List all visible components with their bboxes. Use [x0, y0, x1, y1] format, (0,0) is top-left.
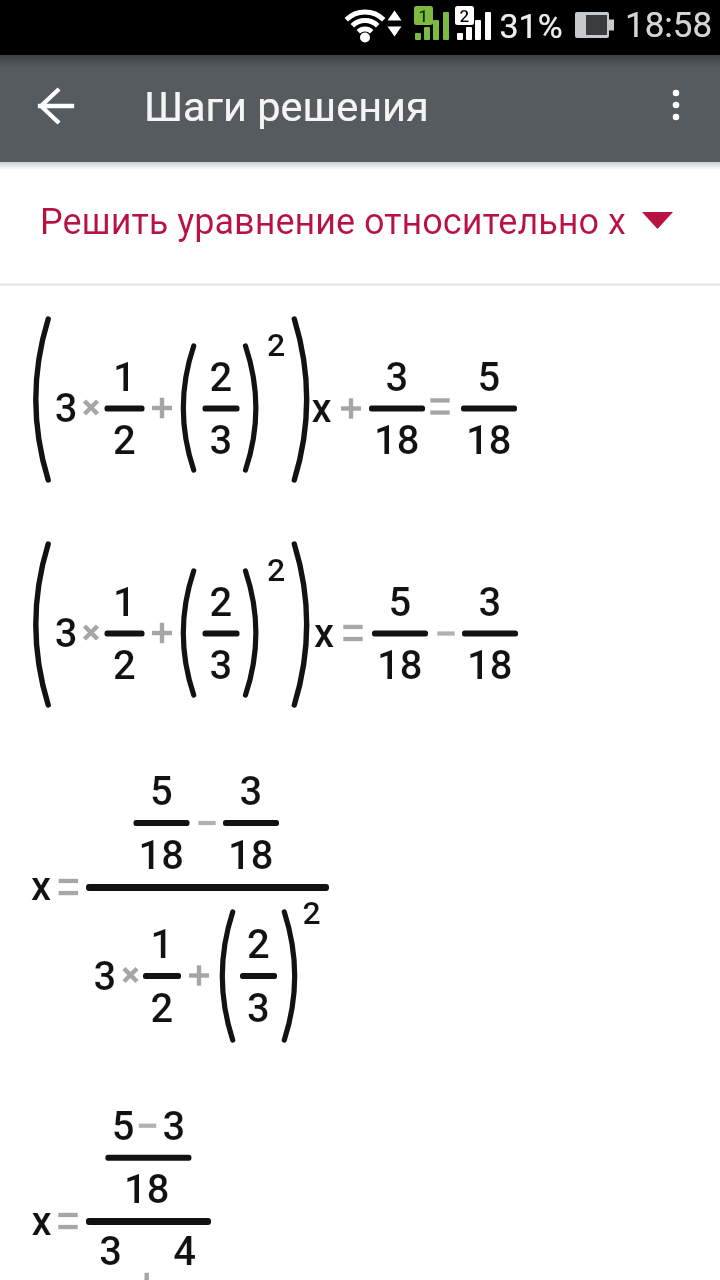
button[interactable] — [640, 60, 712, 157]
button[interactable] — [18, 60, 98, 157]
button[interactable] — [0, 164, 720, 282]
